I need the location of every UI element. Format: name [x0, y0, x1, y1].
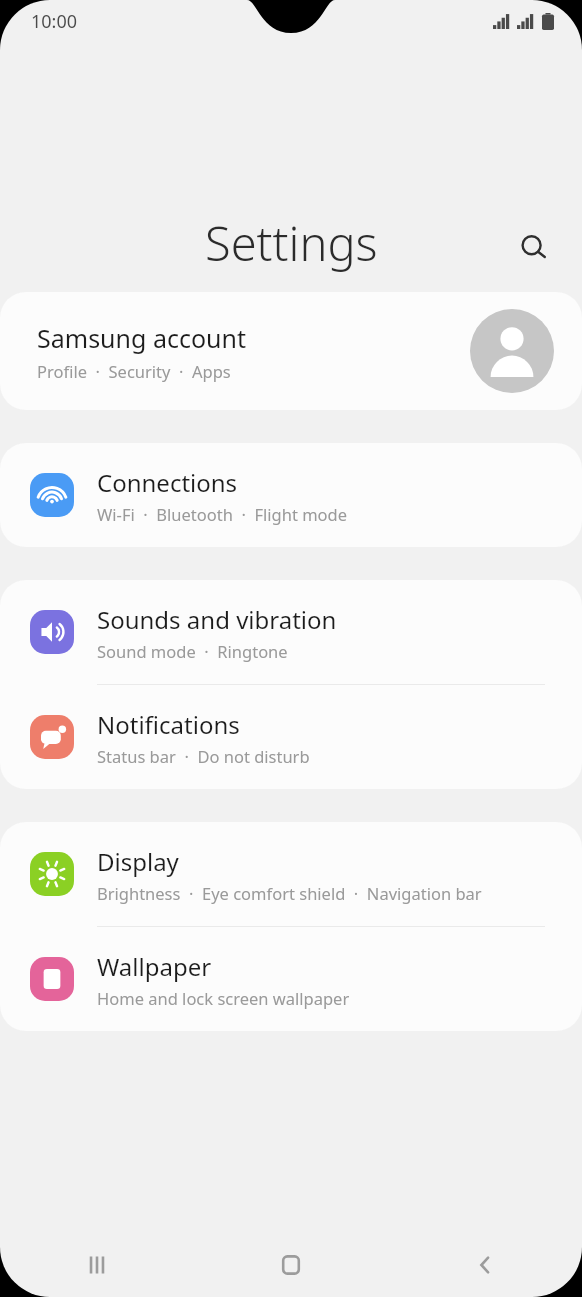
staticText: Brightness · Eye comfort shield · Naviga…: [97, 882, 482, 904]
staticText: Display: [97, 845, 179, 878]
staticText: Connections: [97, 466, 238, 499]
staticText: Samsung account: [37, 321, 246, 355]
button[interactable]: Search: [508, 222, 560, 274]
button[interactable]: Display: [0, 822, 582, 926]
button[interactable]: Sounds and vibration: [0, 580, 582, 684]
button[interactable]: Connections: [0, 443, 582, 547]
staticText: Profile · Security · Apps: [37, 360, 231, 382]
staticText: Sounds and vibration: [97, 603, 337, 636]
staticText: Wallpaper: [97, 950, 212, 983]
staticText: Home and lock screen wallpaper: [97, 987, 350, 1009]
staticText: Status bar · Do not disturb: [97, 745, 310, 767]
staticText: Wi-Fi · Bluetooth · Flight mode: [97, 503, 347, 525]
button[interactable]: Recents: [0, 1233, 194, 1297]
staticText: Notifications: [97, 708, 240, 741]
button[interactable]: Samsung account: [0, 292, 582, 410]
button[interactable]: Wallpaper: [0, 927, 582, 1031]
button[interactable]: Home: [194, 1233, 388, 1297]
button[interactable]: Back: [388, 1233, 582, 1297]
button[interactable]: Notifications: [0, 685, 582, 789]
staticText: Settings: [205, 211, 378, 275]
staticText: Sound mode · Ringtone: [97, 640, 288, 662]
staticText: 10:00: [31, 9, 78, 34]
